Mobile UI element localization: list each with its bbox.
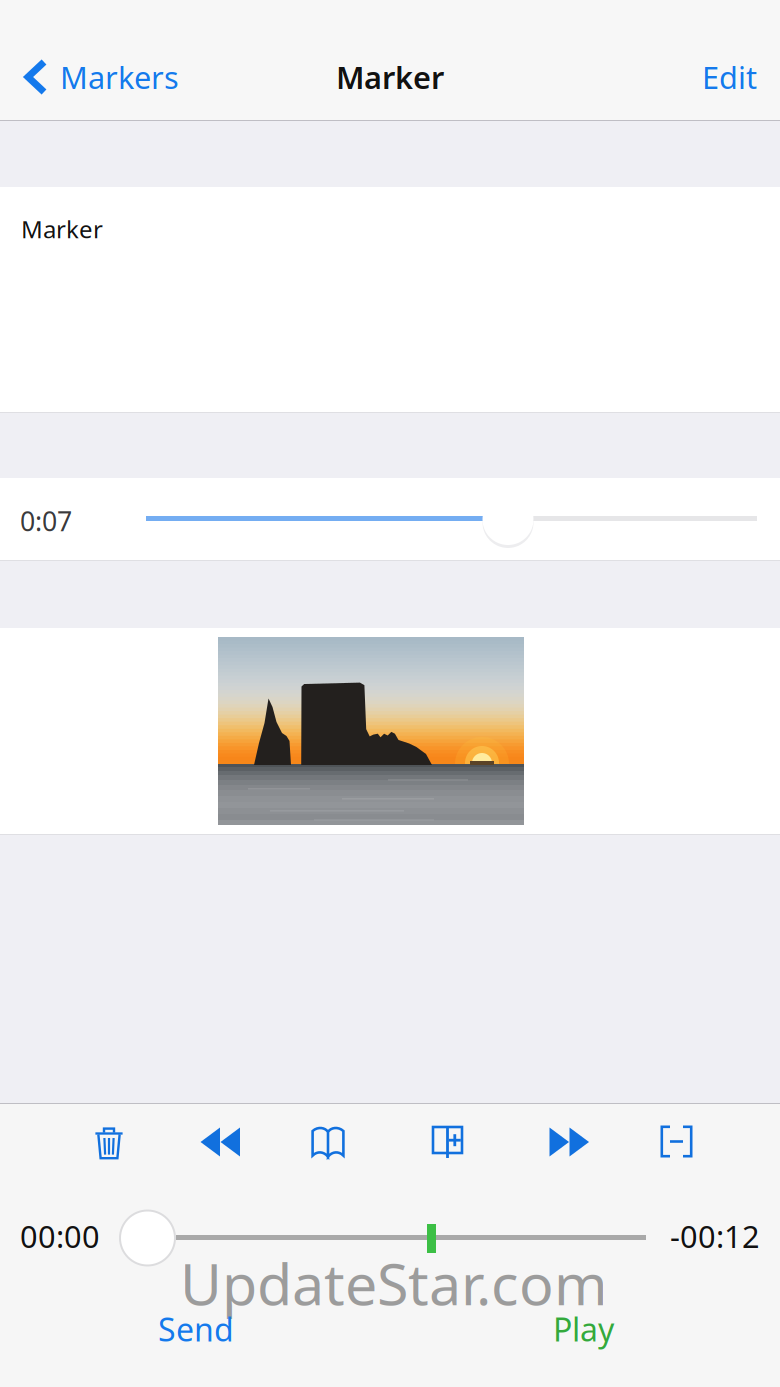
- staticText: Markers: [60, 57, 179, 97]
- staticText: Play: [553, 1308, 614, 1350]
- staticText: UpdateStar.com: [180, 1245, 608, 1321]
- button[interactable]: Rewind: [200, 1127, 241, 1157]
- button[interactable]: Bookmarks: [311, 1125, 345, 1158]
- button[interactable]: Add bookmark: [429, 1125, 466, 1160]
- staticText: Marker: [336, 57, 444, 97]
- staticText: 0:07: [20, 503, 72, 539]
- staticText: 00:00: [20, 1216, 100, 1256]
- button[interactable]: Back to Markers: [0, 55, 280, 99]
- button[interactable]: Trim: [660, 1125, 693, 1158]
- button[interactable]: Send: [158, 1308, 278, 1350]
- staticText: Send: [158, 1308, 234, 1350]
- button[interactable]: Play: [553, 1308, 663, 1350]
- button[interactable]: Delete: [94, 1125, 124, 1162]
- staticText: Edit: [702, 57, 757, 97]
- staticText: -00:12: [670, 1216, 760, 1256]
- button[interactable]: Edit: [620, 55, 780, 99]
- button[interactable]: Fast forward: [549, 1127, 590, 1157]
- staticText: Marker: [21, 213, 103, 245]
